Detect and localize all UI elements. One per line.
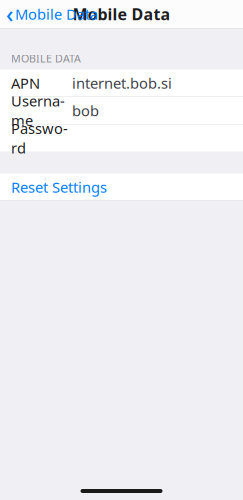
button[interactable]: APN	[0, 69, 243, 97]
staticText: Reset Settings	[11, 177, 107, 197]
staticText: internet.bob.si	[72, 73, 172, 93]
staticText: MOBILE DATA	[11, 51, 81, 65]
staticText: ‹	[6, 0, 13, 29]
button[interactable]: Password	[0, 124, 243, 151]
staticText: Password	[11, 118, 68, 157]
staticText: Mobile Data	[15, 4, 98, 24]
button[interactable]: Reset Settings	[0, 173, 243, 200]
staticText: bob	[72, 101, 99, 120]
staticText: Mobile Data	[72, 3, 170, 25]
staticText: Username	[11, 91, 65, 130]
staticText: APN	[11, 73, 40, 93]
button[interactable]: ‹	[0, 0, 106, 28]
button[interactable]: Username	[0, 97, 243, 124]
